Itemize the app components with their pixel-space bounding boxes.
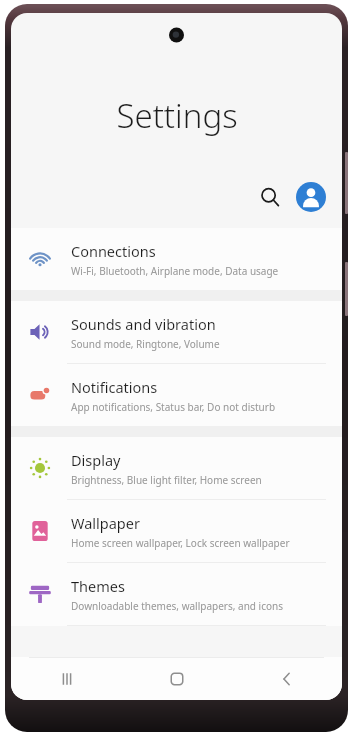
button[interactable]: Themes: [11, 563, 342, 625]
button[interactable]: Connections: [11, 228, 342, 290]
button[interactable]: Sounds and vibration: [11, 301, 342, 363]
staticText: Home screen wallpaper, Lock screen wallp…: [71, 536, 290, 550]
button[interactable]: Notifications: [11, 364, 342, 426]
staticText: Downloadable themes, wallpapers, and ico…: [71, 599, 283, 613]
button[interactable]: Account: [296, 182, 326, 212]
staticText: App notifications, Status bar, Do not di…: [71, 400, 276, 414]
button[interactable]: Wallpaper: [11, 500, 342, 562]
staticText: Sounds and vibration: [71, 314, 216, 334]
button[interactable]: Search: [252, 179, 288, 215]
staticText: Brightness, Blue light filter, Home scre…: [71, 473, 262, 487]
button[interactable]: Home: [122, 658, 232, 700]
staticText: Sound mode, Ringtone, Volume: [71, 337, 220, 351]
staticText: Notifications: [71, 377, 158, 397]
button[interactable]: Display: [11, 437, 342, 499]
button[interactable]: Back: [232, 658, 342, 700]
button[interactable]: Recent apps: [11, 658, 122, 700]
staticText: Connections: [71, 241, 156, 261]
staticText: Themes: [71, 576, 125, 596]
staticText: Settings: [116, 93, 238, 138]
staticText: Wallpaper: [71, 513, 140, 533]
staticText: Wi-Fi, Bluetooth, Airplane mode, Data us…: [71, 264, 279, 278]
staticText: Display: [71, 450, 121, 470]
